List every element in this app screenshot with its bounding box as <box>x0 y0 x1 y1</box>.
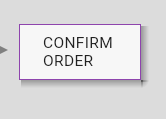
other: Flow arrow <box>0 46 8 54</box>
button[interactable]: CONFIRM ORDER <box>19 24 141 80</box>
staticText: CONFIRM ORDER <box>43 34 114 70</box>
